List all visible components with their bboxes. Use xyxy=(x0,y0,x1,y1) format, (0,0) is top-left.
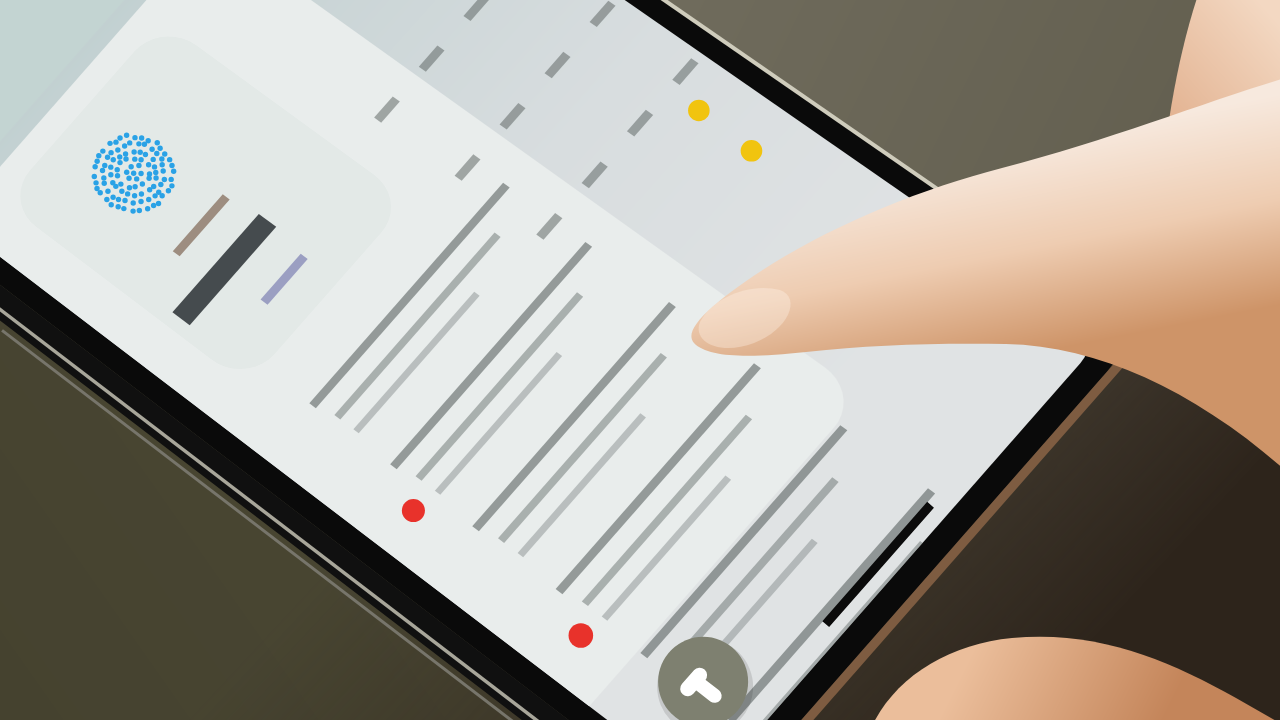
button[interactable]: Phone showing an assistant app xyxy=(0,0,1280,720)
